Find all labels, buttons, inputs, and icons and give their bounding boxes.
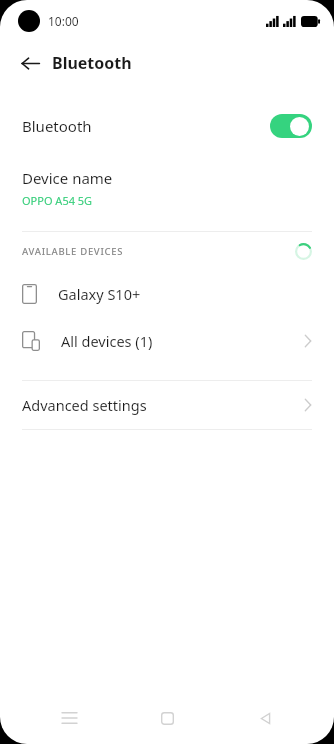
button[interactable]: Advanced settings: [0, 381, 334, 429]
button[interactable]: Home: [144, 695, 190, 741]
button[interactable]: Galaxy S10+: [0, 270, 334, 317]
staticText: AVAILABLE DEVICES: [22, 245, 295, 258]
button[interactable]: Back: [242, 695, 288, 741]
staticText: Device name: [22, 168, 113, 188]
button[interactable]: Bluetooth toggle: [270, 114, 312, 138]
button[interactable]: Back: [14, 47, 46, 79]
button[interactable]: Bluetooth: [0, 104, 334, 148]
staticText: All devices (1): [61, 331, 304, 351]
button[interactable]: Device name: [0, 166, 334, 210]
staticText: OPPO A54 5G: [22, 193, 93, 208]
button[interactable]: Recent apps: [46, 695, 92, 741]
staticText: 10:00: [48, 13, 79, 29]
staticText: Bluetooth: [52, 52, 132, 74]
staticText: Galaxy S10+: [58, 284, 312, 304]
staticText: Bluetooth: [22, 116, 270, 136]
button[interactable]: All devices (1): [0, 317, 334, 364]
staticText: Advanced settings: [22, 395, 304, 415]
